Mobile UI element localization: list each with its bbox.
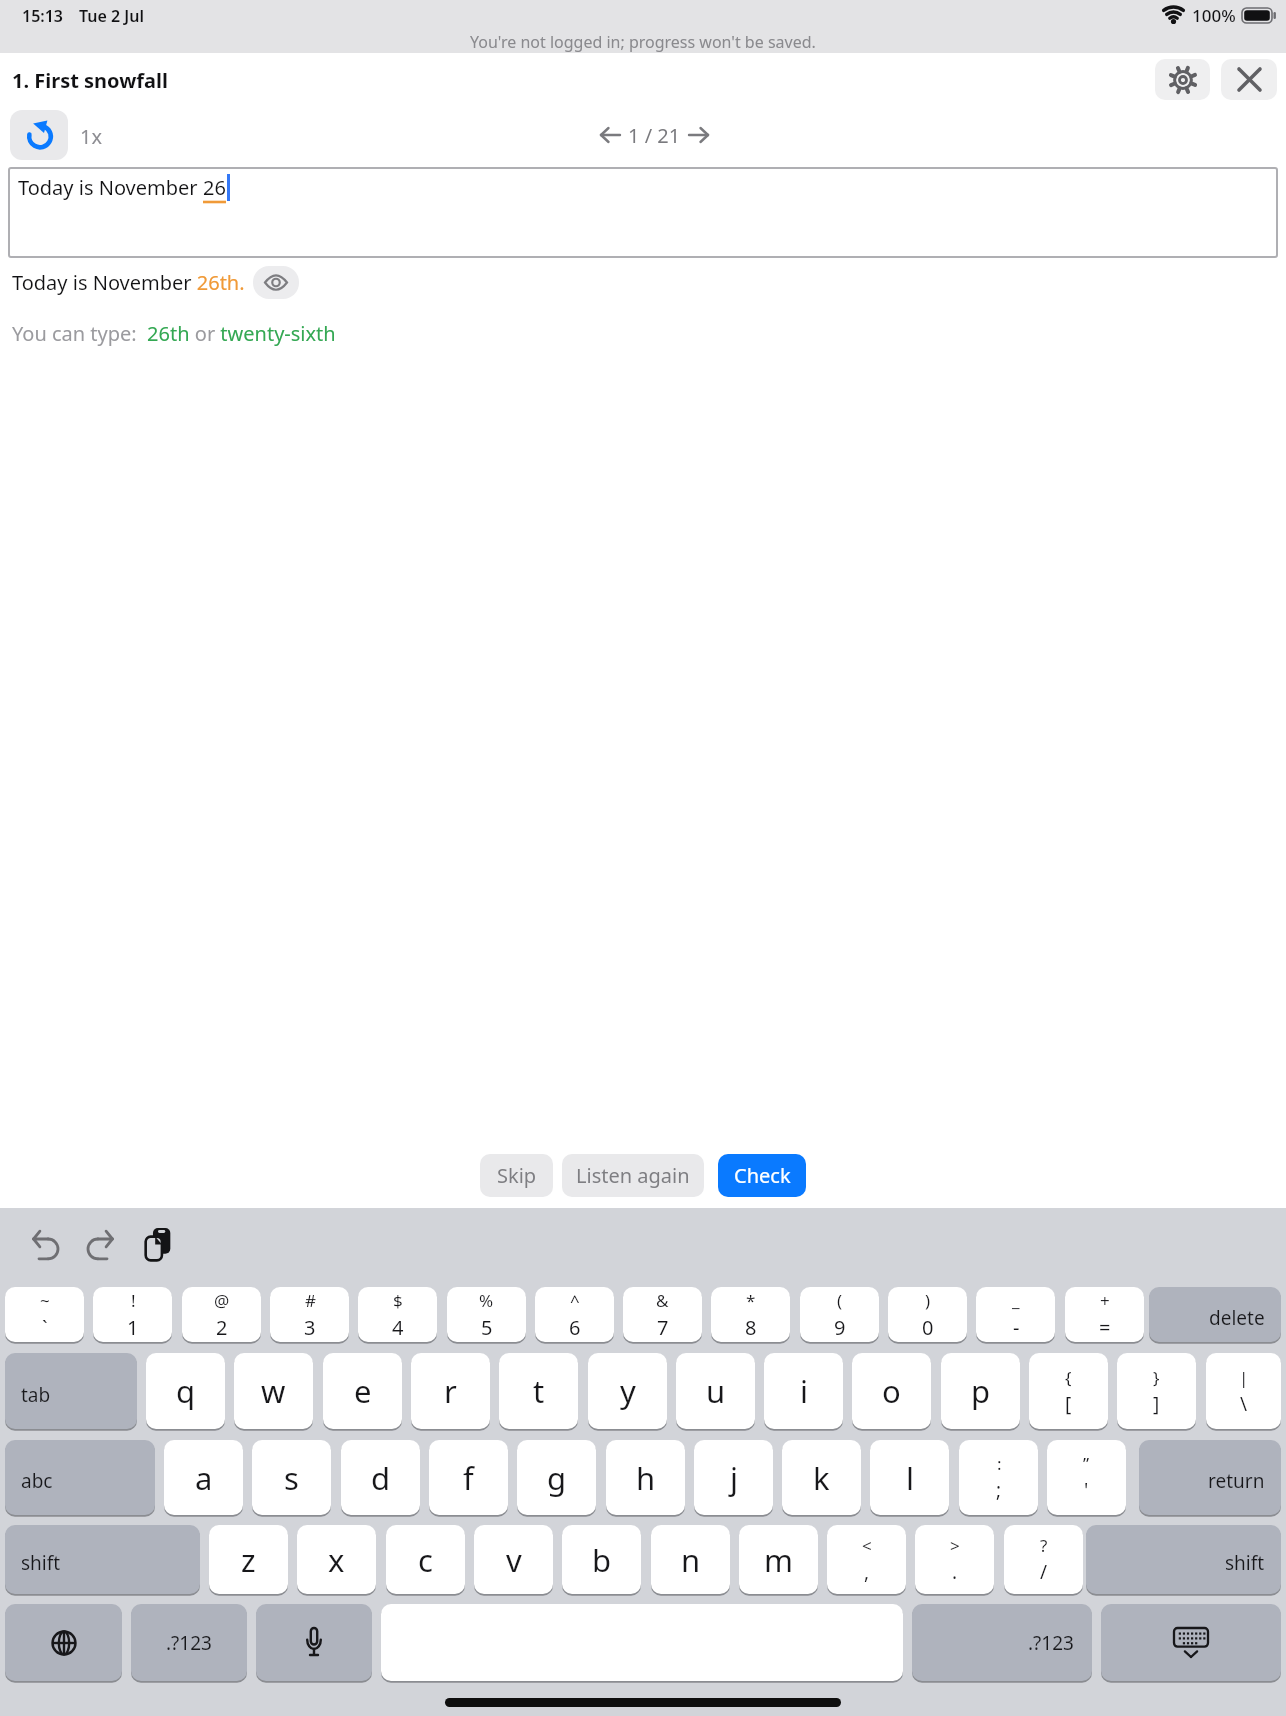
staticText: 1 bbox=[127, 1314, 139, 1341]
button[interactable] bbox=[30, 1230, 60, 1260]
staticText: You can type: 26th or twenty-sixth bbox=[12, 320, 336, 347]
button[interactable]: ~ bbox=[5, 1287, 84, 1342]
button[interactable]: ) bbox=[888, 1287, 967, 1342]
button[interactable]: k bbox=[782, 1440, 861, 1515]
button[interactable]: Listen again bbox=[562, 1154, 704, 1197]
button[interactable]: + bbox=[1065, 1287, 1144, 1342]
staticText: ~ bbox=[40, 1289, 50, 1312]
staticText: tab bbox=[21, 1382, 51, 1408]
button[interactable] bbox=[1155, 59, 1210, 100]
button[interactable]: < bbox=[827, 1525, 906, 1594]
button[interactable]: > bbox=[915, 1525, 994, 1594]
button[interactable]: return bbox=[1139, 1440, 1281, 1515]
button[interactable]: Skip bbox=[480, 1154, 553, 1197]
staticText: | bbox=[1239, 1366, 1249, 1389]
staticText: ) bbox=[925, 1289, 931, 1312]
button[interactable]: tab bbox=[5, 1353, 137, 1429]
staticText: delete bbox=[1209, 1305, 1265, 1331]
staticText: ! bbox=[131, 1289, 136, 1312]
button[interactable]: shift bbox=[1086, 1525, 1281, 1594]
button[interactable]: Check bbox=[718, 1154, 806, 1197]
button[interactable]: ! bbox=[93, 1287, 172, 1342]
button[interactable]: n bbox=[651, 1525, 730, 1594]
staticText: Tue 2 Jul bbox=[79, 5, 145, 27]
button[interactable]: y bbox=[588, 1353, 667, 1429]
staticText: i bbox=[800, 1370, 808, 1412]
button[interactable]: abc bbox=[5, 1440, 155, 1515]
staticText: - bbox=[1013, 1314, 1020, 1341]
button[interactable]: delete bbox=[1149, 1287, 1281, 1342]
button[interactable]: * bbox=[711, 1287, 790, 1342]
button[interactable]: s bbox=[252, 1440, 331, 1515]
button[interactable]: ( bbox=[800, 1287, 879, 1342]
button[interactable]: d bbox=[341, 1440, 420, 1515]
button[interactable]: i bbox=[764, 1353, 843, 1429]
button[interactable]: @ bbox=[182, 1287, 261, 1342]
staticText: $ bbox=[393, 1289, 403, 1312]
staticText: n bbox=[681, 1539, 701, 1581]
button[interactable]: ” bbox=[1047, 1440, 1126, 1515]
button[interactable]: t bbox=[499, 1353, 578, 1429]
button[interactable]: c bbox=[386, 1525, 465, 1594]
button[interactable]: z bbox=[209, 1525, 288, 1594]
button[interactable]: h bbox=[606, 1440, 685, 1515]
button[interactable]: v bbox=[474, 1525, 553, 1594]
button[interactable] bbox=[599, 126, 622, 144]
button[interactable]: u bbox=[676, 1353, 755, 1429]
button[interactable]: { bbox=[1029, 1353, 1108, 1429]
button[interactable]: .?123 bbox=[131, 1604, 247, 1681]
staticText: o bbox=[882, 1370, 901, 1412]
button[interactable] bbox=[1221, 59, 1277, 100]
button[interactable]: _ bbox=[976, 1287, 1055, 1342]
button[interactable]: b bbox=[562, 1525, 641, 1594]
button[interactable] bbox=[381, 1604, 903, 1681]
button[interactable]: % bbox=[447, 1287, 526, 1342]
staticText: u bbox=[706, 1370, 726, 1412]
staticText: @ bbox=[214, 1289, 230, 1312]
button[interactable] bbox=[5, 1604, 122, 1681]
button[interactable] bbox=[1101, 1604, 1281, 1681]
button[interactable]: m bbox=[739, 1525, 818, 1594]
button[interactable]: f bbox=[429, 1440, 508, 1515]
button[interactable]: r bbox=[411, 1353, 490, 1429]
button[interactable]: e bbox=[323, 1353, 402, 1429]
button[interactable]: & bbox=[623, 1287, 702, 1342]
button[interactable]: : bbox=[959, 1440, 1038, 1515]
button[interactable]: q bbox=[146, 1353, 225, 1429]
staticText: .?123 bbox=[1028, 1630, 1074, 1656]
button[interactable]: $ bbox=[358, 1287, 437, 1342]
staticText: 0 bbox=[922, 1314, 934, 1341]
button[interactable] bbox=[10, 110, 68, 160]
staticText: < bbox=[862, 1534, 872, 1557]
button[interactable]: g bbox=[517, 1440, 596, 1515]
button[interactable] bbox=[687, 126, 710, 144]
staticText: 2 bbox=[216, 1314, 228, 1341]
button[interactable]: ? bbox=[1004, 1525, 1083, 1594]
button[interactable] bbox=[256, 1604, 372, 1681]
staticText: .?123 bbox=[166, 1630, 212, 1656]
button[interactable]: w bbox=[234, 1353, 313, 1429]
staticText: 26 bbox=[203, 174, 226, 201]
staticText: q bbox=[176, 1370, 196, 1412]
button[interactable]: a bbox=[164, 1440, 243, 1515]
staticText: * bbox=[746, 1289, 756, 1312]
button[interactable]: # bbox=[270, 1287, 349, 1342]
button[interactable] bbox=[253, 266, 299, 299]
button[interactable]: .?123 bbox=[912, 1604, 1092, 1681]
button[interactable]: shift bbox=[5, 1525, 200, 1594]
button[interactable] bbox=[144, 1228, 172, 1261]
button[interactable]: p bbox=[941, 1353, 1020, 1429]
button[interactable]: 1x bbox=[80, 123, 103, 150]
button[interactable]: j bbox=[694, 1440, 773, 1515]
staticText: d bbox=[371, 1457, 391, 1499]
button[interactable]: ^ bbox=[535, 1287, 614, 1342]
button[interactable]: | bbox=[1206, 1353, 1281, 1429]
staticText: Skip bbox=[497, 1162, 537, 1189]
button[interactable]: x bbox=[297, 1525, 376, 1594]
button[interactable]: l bbox=[870, 1440, 949, 1515]
staticText: z bbox=[241, 1539, 256, 1581]
button[interactable] bbox=[86, 1230, 116, 1260]
staticText: ; bbox=[996, 1477, 1002, 1503]
button[interactable]: } bbox=[1117, 1353, 1196, 1429]
button[interactable]: o bbox=[852, 1353, 931, 1429]
